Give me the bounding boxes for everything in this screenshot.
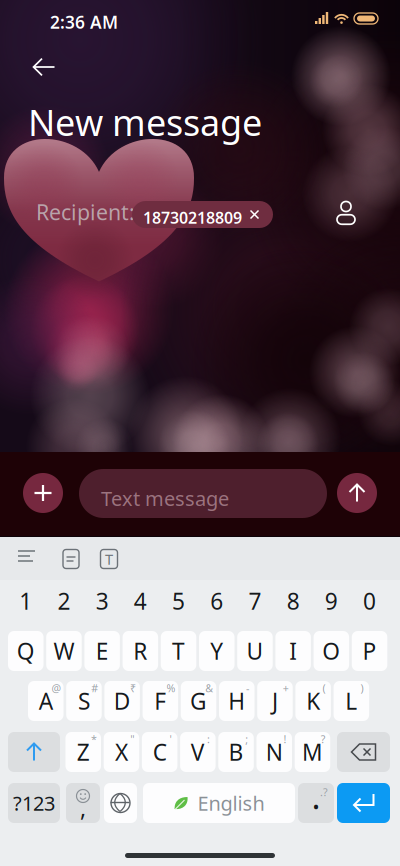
button[interactable]: Shift	[8, 732, 60, 772]
staticText: ?123	[13, 790, 55, 816]
staticText: '	[169, 732, 171, 746]
button[interactable]: W	[46, 631, 82, 671]
staticText: ₹	[130, 681, 136, 695]
button[interactable]: H	[219, 681, 254, 721]
staticText: J	[272, 686, 278, 716]
button[interactable]: F	[143, 681, 178, 721]
button[interactable]: R	[123, 631, 158, 671]
button[interactable]: 5	[161, 590, 196, 612]
button[interactable]: S	[66, 681, 102, 721]
button[interactable]: E	[84, 631, 120, 671]
staticText: 18730218809	[143, 207, 242, 228]
staticText: Z	[77, 737, 90, 767]
staticText: •	[312, 794, 319, 818]
staticText: W	[53, 636, 74, 666]
button[interactable]: J	[257, 681, 293, 721]
staticText: H	[228, 686, 245, 716]
staticText: "	[130, 732, 134, 746]
button[interactable]: Clipboard	[55, 546, 87, 572]
button[interactable]: 18730218809	[132, 201, 273, 228]
button[interactable]: Back	[28, 54, 60, 80]
button[interactable]: Z	[65, 732, 101, 772]
button[interactable]: D	[104, 681, 140, 721]
staticText: P	[363, 636, 377, 666]
button[interactable]: Backspace	[337, 732, 390, 772]
staticText: 2	[57, 586, 70, 616]
button[interactable]: Text style	[93, 546, 125, 572]
button[interactable]: M	[295, 732, 330, 772]
staticText: 7	[248, 586, 261, 616]
staticText: V	[191, 737, 205, 767]
staticText: -	[246, 681, 249, 695]
button[interactable]: Enter	[337, 783, 390, 823]
button[interactable]: Emoji and comma	[66, 783, 100, 823]
staticText: O	[322, 636, 340, 666]
button[interactable]: T	[161, 631, 196, 671]
staticText: T	[172, 636, 185, 666]
staticText: 9	[325, 586, 338, 616]
button[interactable]: V	[180, 732, 216, 772]
button[interactable]: Q	[8, 631, 43, 671]
button[interactable]: N	[256, 732, 292, 772]
button[interactable]: X	[104, 732, 139, 772]
button[interactable]: K	[295, 681, 331, 721]
button[interactable]: P	[352, 631, 387, 671]
button[interactable]: Send	[337, 473, 377, 513]
staticText: :	[207, 732, 210, 746]
staticText: K	[306, 686, 320, 716]
button[interactable]: Text message	[79, 469, 327, 518]
button[interactable]: G	[181, 681, 216, 721]
button[interactable]: A	[28, 681, 63, 721]
staticText: B	[229, 737, 244, 767]
staticText: *	[91, 732, 97, 746]
staticText: Q	[17, 636, 35, 666]
staticText: A	[39, 686, 53, 716]
staticText: )	[361, 681, 364, 695]
button[interactable]: 0	[352, 590, 387, 612]
staticText: New message	[28, 98, 262, 146]
staticText: F	[154, 686, 166, 716]
button[interactable]: B	[218, 732, 254, 772]
staticText: ,	[80, 793, 86, 823]
staticText: 6	[210, 586, 223, 616]
button[interactable]: I	[275, 631, 311, 671]
button[interactable]: Period	[298, 783, 334, 823]
button[interactable]: U	[237, 631, 273, 671]
staticText: C	[153, 737, 167, 767]
button[interactable]: 2	[46, 590, 82, 612]
button[interactable]: ?123	[8, 783, 60, 823]
staticText: %	[167, 681, 176, 695]
staticText: U	[246, 636, 263, 666]
staticText: 0	[363, 586, 376, 616]
button[interactable]: 4	[123, 590, 158, 612]
staticText: L	[345, 686, 357, 716]
button[interactable]: 8	[275, 590, 311, 612]
button[interactable]: C	[142, 732, 177, 772]
button[interactable]: English	[143, 783, 295, 823]
button[interactable]: L	[334, 681, 369, 721]
staticText: !	[283, 732, 286, 746]
staticText: ?	[321, 732, 326, 746]
staticText: S	[78, 686, 90, 716]
staticText: 5	[172, 586, 185, 616]
button[interactable]: 3	[84, 590, 120, 612]
staticText: M	[302, 737, 323, 767]
staticText: N	[266, 737, 283, 767]
button[interactable]: 1	[8, 590, 43, 612]
staticText: T	[105, 549, 113, 569]
staticText: (	[322, 681, 325, 695]
button[interactable]: 9	[314, 590, 349, 612]
staticText: +	[283, 681, 289, 695]
button[interactable]: 6	[199, 590, 234, 612]
button[interactable]: Choose contact	[335, 201, 357, 225]
button[interactable]: Switch language	[104, 783, 137, 823]
button[interactable]: Keyboard menu	[16, 546, 48, 572]
staticText: R	[133, 636, 147, 666]
staticText: .?	[320, 785, 328, 799]
button[interactable]: O	[314, 631, 349, 671]
staticText: Text message	[101, 485, 229, 512]
button[interactable]: Add attachment	[23, 473, 63, 513]
button[interactable]: Y	[199, 631, 234, 671]
button[interactable]: 7	[237, 590, 273, 612]
staticText: 3	[96, 586, 109, 616]
